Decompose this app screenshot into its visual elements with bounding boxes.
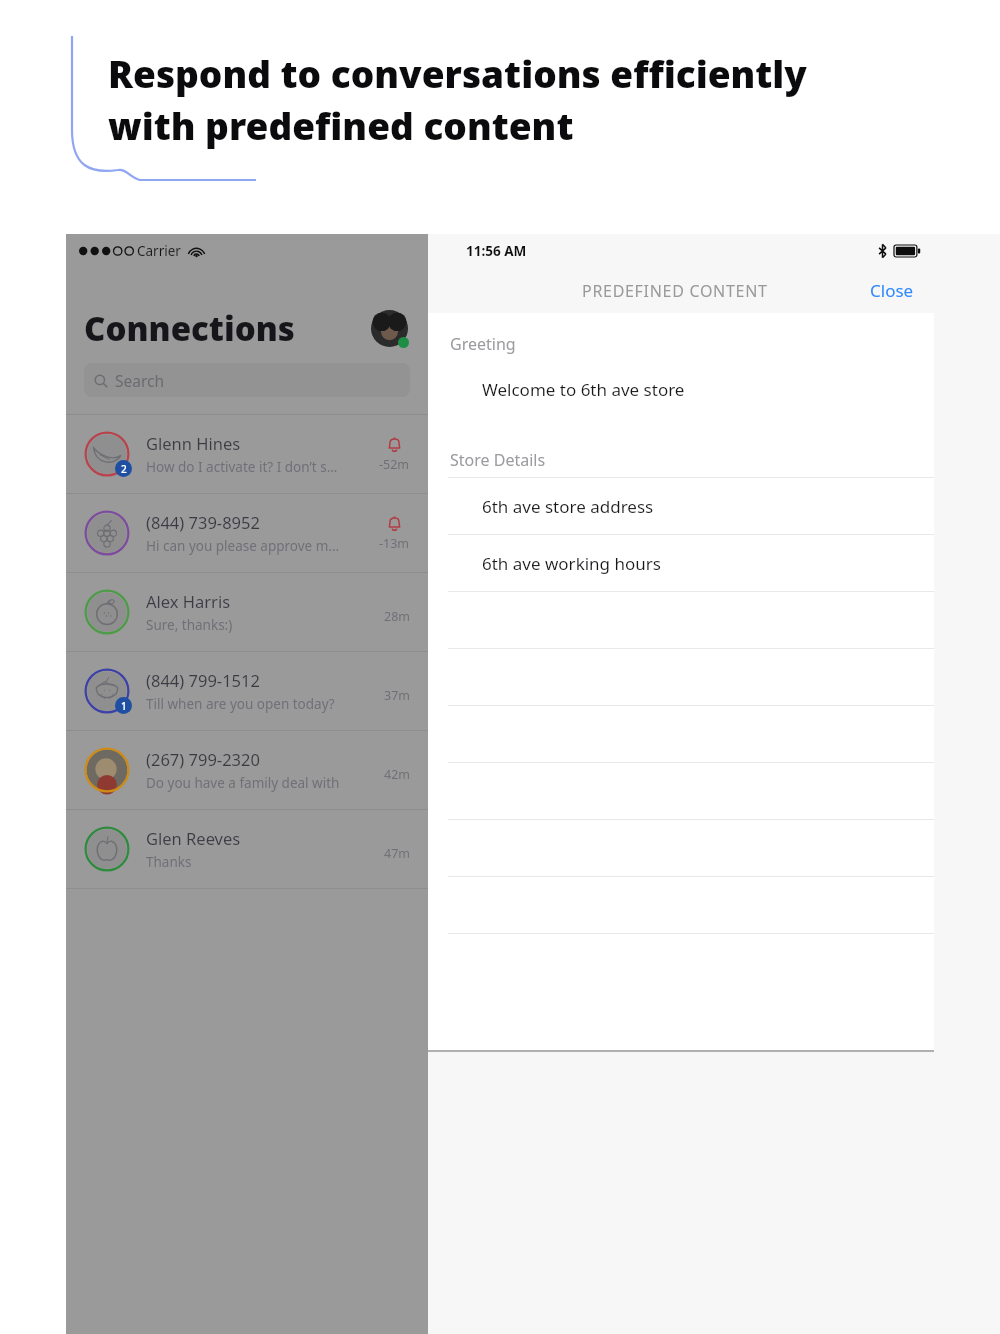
button[interactable]: Alex Harris (66, 573, 428, 652)
staticText: 1 (121, 699, 127, 713)
staticText: How do I activate it? I don’t s... (146, 458, 338, 476)
staticText: 37m (384, 687, 410, 704)
staticText: -52m (379, 456, 410, 473)
button[interactable]: 1 (66, 652, 428, 731)
staticText: 6th ave working hours (482, 552, 661, 575)
staticText: (267) 799-2320 (146, 748, 260, 770)
button[interactable]: Close (866, 275, 918, 306)
staticText: with predefined content (108, 100, 574, 150)
button[interactable]: 2 (66, 415, 428, 494)
staticText: Connections (84, 306, 295, 351)
staticText: 11:56 AM (466, 242, 527, 260)
staticText: Glen Reeves (146, 827, 241, 849)
staticText: Search (115, 370, 165, 391)
staticText: Hi can you please approve m... (146, 537, 340, 555)
staticText: Carrier (137, 242, 181, 260)
staticText: 2 (121, 462, 127, 476)
staticText: Welcome to 6th ave store (482, 378, 685, 401)
staticText: Respond to conversations efficiently (108, 48, 807, 98)
staticText: Store Details (450, 449, 546, 471)
staticText: Close (870, 279, 914, 302)
button[interactable]: Profile (371, 310, 408, 347)
button[interactable]: Glen Reeves (66, 810, 428, 889)
staticText: Thanks (146, 853, 192, 871)
staticText: Do you have a family deal with (146, 774, 340, 792)
staticText: (844) 739-8952 (146, 511, 260, 533)
button[interactable]: Welcome to 6th ave store (428, 361, 934, 417)
staticText: (844) 799-1512 (146, 669, 260, 691)
staticText: Glenn Hines (146, 432, 241, 454)
button[interactable]: (844) 739-8952 (66, 494, 428, 573)
staticText: 6th ave store address (482, 495, 654, 518)
staticText: 42m (384, 766, 410, 783)
button[interactable]: 6th ave store address (428, 477, 934, 534)
staticText: Greeting (450, 333, 516, 355)
staticText: -13m (379, 535, 410, 552)
staticText: PREDEFINED CONTENT (582, 280, 768, 302)
staticText: 28m (384, 608, 410, 625)
button[interactable]: 6th ave working hours (428, 534, 934, 591)
staticText: Alex Harris (146, 590, 231, 612)
staticText: 47m (384, 845, 410, 862)
button[interactable]: Search (84, 363, 410, 397)
button[interactable]: (267) 799-2320 (66, 731, 428, 810)
staticText: Sure, thanks:) (146, 616, 233, 634)
staticText: Till when are you open today? (146, 695, 335, 713)
